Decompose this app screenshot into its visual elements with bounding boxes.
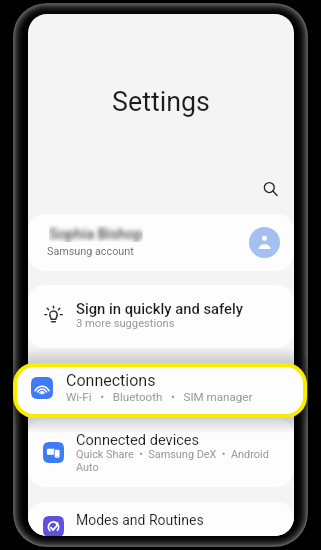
staticText: Sign in quickly and safely [76, 300, 244, 317]
button[interactable]: Search [257, 176, 282, 201]
staticText: Settings [28, 86, 294, 117]
staticText: 3 more suggestions [76, 317, 276, 330]
staticText: Connected devices [76, 431, 200, 448]
staticText: Wi-Fi • Bluetooth • SIM manager [66, 390, 276, 404]
button[interactable]: Modes and Routines [28, 502, 294, 536]
button[interactable]: Sign in quickly and safely [28, 285, 294, 348]
button[interactable]: Account [249, 227, 280, 258]
staticText: Sophia Bishop [49, 225, 143, 242]
staticText: Quick Share • Samsung DeX • Android Auto [76, 448, 276, 474]
button[interactable]: Connected devices [28, 419, 294, 487]
staticText: Connections [66, 371, 156, 390]
staticText: Modes and Routines [76, 512, 204, 528]
button[interactable]: Connections [17, 367, 303, 414]
button[interactable]: Sophia Bishop [28, 214, 294, 271]
staticText: Samsung account [47, 245, 134, 258]
